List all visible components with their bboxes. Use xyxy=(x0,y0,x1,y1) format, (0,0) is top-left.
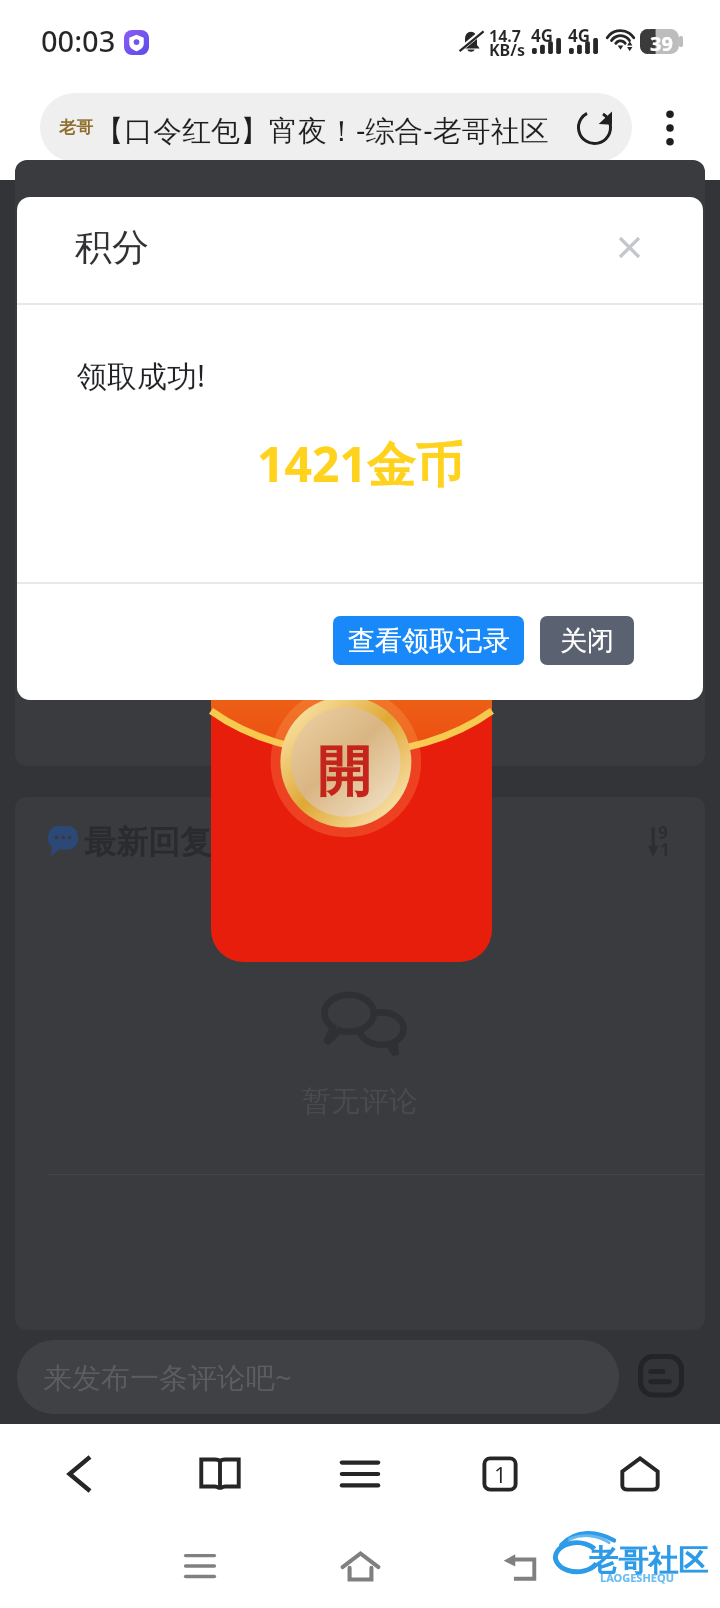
staticText: 1 xyxy=(660,838,670,861)
staticText: 14.7 xyxy=(489,25,521,47)
button[interactable]: Close xyxy=(598,216,660,278)
button[interactable]: 来发布一条评论吧~ xyxy=(17,1340,619,1414)
staticText: KB/s xyxy=(489,39,525,61)
button[interactable]: Menu xyxy=(290,1424,430,1524)
button[interactable]: Home xyxy=(325,1531,395,1601)
staticText: 4G xyxy=(568,24,591,47)
button[interactable]: Back xyxy=(485,1531,555,1601)
button[interactable]: 老哥 xyxy=(40,93,632,162)
button[interactable]: 查看领取记录 xyxy=(333,616,524,665)
button[interactable]: 关闭 xyxy=(540,616,634,665)
staticText: 9 xyxy=(658,821,668,844)
staticText: LAOGESHEQU xyxy=(600,1570,675,1585)
staticText: 积分 xyxy=(75,224,149,271)
button[interactable]: Comments xyxy=(619,1340,703,1414)
staticText: 1421金币 xyxy=(17,431,703,497)
button[interactable]: Bookmarks xyxy=(150,1424,290,1524)
button[interactable]: Tabs xyxy=(430,1424,570,1524)
button[interactable]: Back xyxy=(10,1424,150,1524)
staticText: 查看领取记录 xyxy=(348,624,510,658)
staticText: 39 xyxy=(650,30,673,55)
staticText: 4G xyxy=(531,24,554,47)
button[interactable]: Refresh xyxy=(564,97,624,157)
staticText: 关闭 xyxy=(560,624,614,658)
staticText: 00:03 xyxy=(41,21,116,60)
staticText: 1 xyxy=(494,1459,507,1489)
staticText: 開 xyxy=(317,738,371,806)
staticText: 老哥社区 xyxy=(588,1542,708,1580)
button[interactable]: More options xyxy=(640,98,700,158)
staticText: 老哥 xyxy=(59,117,93,138)
staticText: 领取成功! xyxy=(77,355,206,396)
staticText: 来发布一条评论吧~ xyxy=(43,1357,292,1397)
button[interactable]: Recents xyxy=(165,1531,235,1601)
staticText: 最新回复（ xyxy=(84,822,244,862)
button[interactable]: Home xyxy=(570,1424,710,1524)
staticText: 【口令红包】宵夜！-综合-老哥社区 xyxy=(95,110,549,150)
